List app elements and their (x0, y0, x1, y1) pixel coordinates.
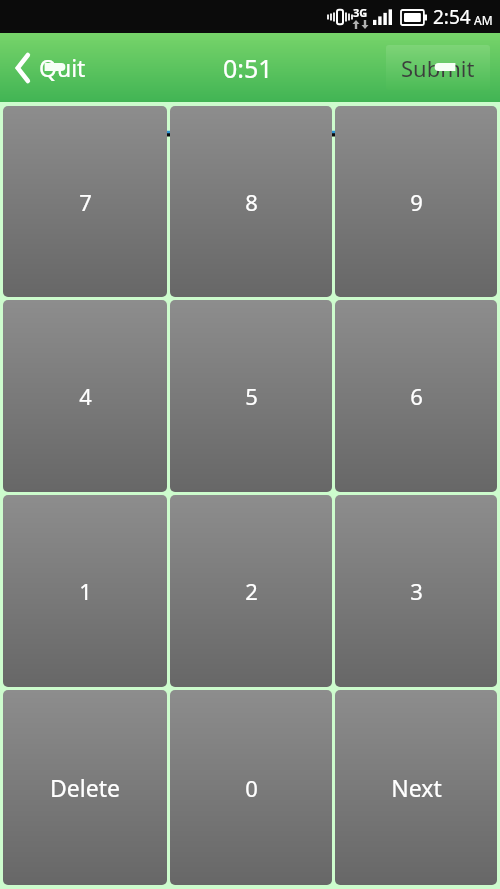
button[interactable]: Quit (10, 46, 92, 89)
staticText: 2:54 (433, 4, 471, 30)
staticText: Submit (401, 53, 475, 83)
staticText: 8 (245, 187, 258, 217)
button[interactable]: 3 (335, 495, 497, 687)
button[interactable]: 0 (170, 690, 332, 885)
button[interactable]: Delete (3, 690, 167, 885)
staticText: Quit (39, 52, 86, 83)
button[interactable]: 1 (3, 495, 167, 687)
staticText: 0 (245, 773, 258, 803)
button[interactable]: 7 (3, 106, 167, 297)
staticText: 1 (79, 576, 92, 606)
staticText: 9 (410, 187, 423, 217)
button[interactable]: 9 (335, 106, 497, 297)
button[interactable]: 5 (170, 300, 332, 492)
button[interactable]: Submit (386, 45, 490, 90)
staticText: AM (474, 12, 493, 28)
button[interactable]: Next (335, 690, 497, 885)
staticText: 3 (410, 576, 423, 606)
button[interactable]: 6 (335, 300, 497, 492)
staticText: Next (391, 772, 442, 803)
staticText: Delete (50, 772, 120, 803)
button[interactable]: 2 (170, 495, 332, 687)
staticText: 0:51 (223, 51, 273, 85)
staticText: 6 (410, 381, 423, 411)
staticText: 7 (79, 187, 92, 217)
button[interactable]: 8 (170, 106, 332, 297)
button[interactable]: 4 (3, 300, 167, 492)
staticText: 4 (79, 381, 92, 411)
staticText: 5 (245, 381, 258, 411)
staticText: 3G (353, 5, 368, 20)
staticText: 2 (245, 576, 258, 606)
